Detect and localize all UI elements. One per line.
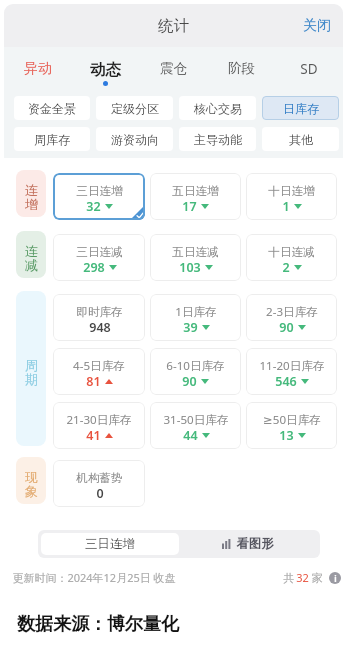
staticText: 主导动能 bbox=[194, 132, 242, 147]
staticText: 11-20日库存 bbox=[259, 358, 325, 374]
staticText: 资金全景 bbox=[28, 101, 76, 116]
button[interactable]: 震仓 bbox=[139, 47, 207, 88]
staticText: 948 bbox=[89, 319, 111, 336]
button[interactable]: 看图形 bbox=[179, 533, 317, 555]
staticText: 周 期 bbox=[25, 357, 38, 388]
button[interactable]: 定级分区 bbox=[96, 96, 173, 120]
button[interactable]: 异动 bbox=[4, 47, 71, 88]
staticText: 0 bbox=[96, 485, 104, 502]
staticText: 游资动向 bbox=[111, 132, 159, 147]
staticText: 统计 bbox=[158, 16, 189, 36]
staticText: 三日连增 bbox=[76, 184, 123, 199]
staticText: 现 象 bbox=[25, 469, 38, 500]
staticText: 81 bbox=[86, 373, 101, 390]
staticText: 2-3日库存 bbox=[266, 304, 318, 320]
staticText: 4-5日库存 bbox=[73, 358, 125, 374]
staticText: 32 bbox=[86, 198, 101, 215]
staticText: 90 bbox=[279, 319, 294, 336]
staticText: 震仓 bbox=[160, 60, 187, 77]
staticText: 十日连减 bbox=[268, 245, 315, 260]
button[interactable]: 五日连减 bbox=[150, 234, 241, 281]
button[interactable]: 机构蓄势 bbox=[53, 460, 145, 507]
button[interactable]: ≥50日库存 bbox=[246, 402, 337, 449]
button[interactable]: SD bbox=[275, 47, 343, 88]
staticText: 39 bbox=[183, 319, 198, 336]
staticText: 五日连增 bbox=[172, 184, 219, 199]
staticText: 连 增 bbox=[25, 182, 38, 213]
staticText: 定级分区 bbox=[111, 101, 159, 116]
staticText: 看图形 bbox=[236, 536, 274, 552]
staticText: ≥50日库存 bbox=[263, 412, 321, 428]
button[interactable]: 三日连增 bbox=[41, 533, 179, 555]
staticText: 41 bbox=[86, 427, 101, 444]
staticText: 关闭 bbox=[303, 17, 331, 35]
staticText: 546 bbox=[275, 373, 297, 390]
staticText: 1 bbox=[282, 198, 290, 215]
staticText: 13 bbox=[279, 427, 294, 444]
staticText: 1日库存 bbox=[175, 304, 217, 320]
button[interactable]: 十日连增 bbox=[246, 173, 337, 220]
staticText: 数据来源：博尔量化 bbox=[17, 613, 179, 636]
staticText: 90 bbox=[182, 373, 197, 390]
staticText: 周库存 bbox=[34, 132, 70, 147]
button[interactable]: 关闭 bbox=[291, 4, 343, 47]
staticText: 日库存 bbox=[283, 101, 319, 116]
button[interactable]: 1日库存 bbox=[150, 294, 241, 341]
button[interactable]: 十日连减 bbox=[246, 234, 337, 281]
button[interactable]: 4-5日库存 bbox=[53, 348, 145, 395]
staticText: 三日连减 bbox=[76, 245, 123, 260]
staticText: 阶段 bbox=[228, 60, 255, 77]
staticText: 17 bbox=[182, 198, 197, 215]
button[interactable]: 即时库存 bbox=[53, 294, 145, 341]
staticText: 核心交易 bbox=[194, 101, 242, 116]
staticText: 动态 bbox=[90, 60, 121, 80]
staticText: 十日连增 bbox=[268, 184, 315, 199]
button[interactable]: 日库存 bbox=[262, 96, 339, 120]
staticText: 21-30日库存 bbox=[66, 412, 132, 428]
button[interactable]: 2-3日库存 bbox=[246, 294, 337, 341]
button[interactable]: 资金全景 bbox=[14, 96, 90, 120]
staticText: i bbox=[334, 573, 337, 584]
button[interactable]: 三日连增 bbox=[53, 173, 145, 220]
staticText: 五日连减 bbox=[172, 245, 219, 260]
staticText: 44 bbox=[183, 427, 198, 444]
button[interactable]: 周库存 bbox=[14, 127, 90, 151]
button[interactable]: Info bbox=[329, 572, 341, 584]
button[interactable]: 31-50日库存 bbox=[150, 402, 241, 449]
button[interactable]: 核心交易 bbox=[179, 96, 256, 120]
button[interactable]: 主导动能 bbox=[179, 127, 256, 151]
staticText: 32 bbox=[296, 570, 309, 585]
staticText: 298 bbox=[83, 259, 105, 276]
staticText: 连 减 bbox=[25, 243, 38, 274]
staticText: 103 bbox=[179, 259, 201, 276]
staticText: SD bbox=[300, 60, 318, 78]
staticText: 31-50日库存 bbox=[163, 412, 229, 428]
staticText: 其他 bbox=[289, 132, 313, 147]
staticText: 6-10日库存 bbox=[166, 358, 225, 374]
button[interactable]: 游资动向 bbox=[96, 127, 173, 151]
button[interactable]: 11-20日库存 bbox=[246, 348, 337, 395]
button[interactable]: 阶段 bbox=[207, 47, 275, 88]
staticText: 2 bbox=[282, 259, 290, 276]
staticText: 共 bbox=[282, 570, 296, 585]
staticText: 更新时间：2024年12月25日 收盘 bbox=[12, 570, 176, 585]
staticText: 机构蓄势 bbox=[76, 471, 123, 486]
button[interactable]: 动态 bbox=[71, 47, 139, 88]
button[interactable]: 三日连减 bbox=[53, 234, 145, 281]
button[interactable]: 其他 bbox=[262, 127, 339, 151]
staticText: 即时库存 bbox=[76, 305, 123, 320]
staticText: 三日连增 bbox=[85, 536, 135, 552]
button[interactable]: 21-30日库存 bbox=[53, 402, 145, 449]
button[interactable]: 6-10日库存 bbox=[150, 348, 241, 395]
button[interactable]: 五日连增 bbox=[150, 173, 241, 220]
staticText: 家 bbox=[309, 570, 323, 585]
staticText: 异动 bbox=[24, 60, 52, 78]
